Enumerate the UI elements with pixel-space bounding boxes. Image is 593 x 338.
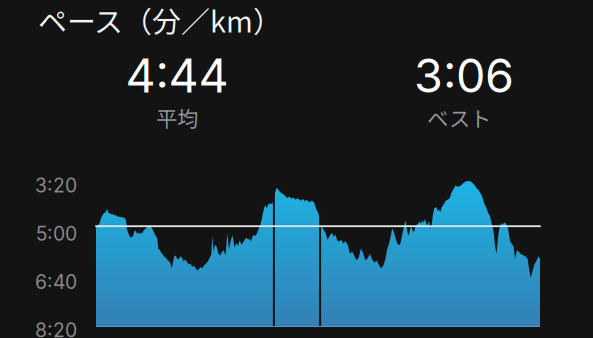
staticText: 6:40 bbox=[35, 270, 77, 294]
staticText: ペース（分／km） bbox=[38, 0, 282, 41]
staticText: ベスト bbox=[427, 102, 491, 133]
button[interactable]: Pace graph bbox=[96, 181, 540, 329]
staticText: 8:20 bbox=[35, 318, 77, 338]
staticText: 5:00 bbox=[36, 222, 77, 245]
staticText: 3:20 bbox=[35, 174, 77, 197]
staticText: 平均 bbox=[156, 102, 198, 133]
staticText: 3:06 bbox=[414, 47, 514, 104]
staticText: 4:44 bbox=[125, 47, 228, 104]
